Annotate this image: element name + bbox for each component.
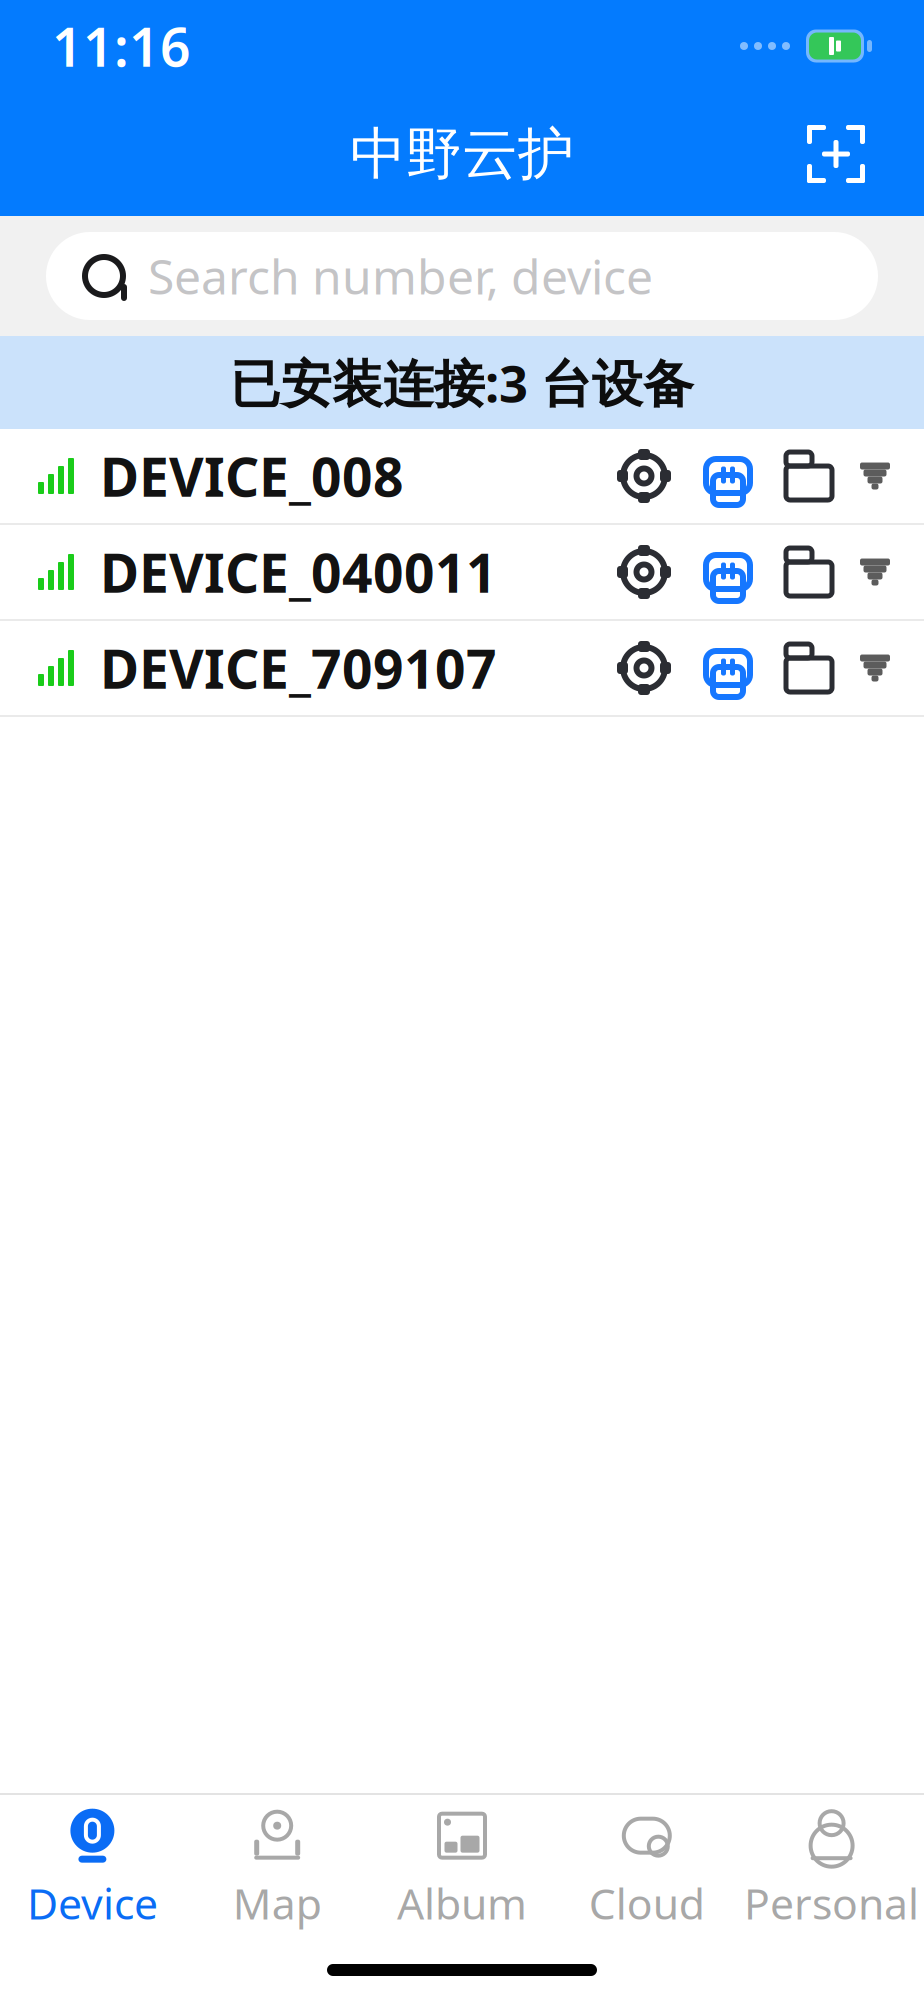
button[interactable]: Search number, device [0, 216, 924, 336]
staticText: Device [27, 1875, 158, 1931]
button[interactable]: DEVICE_040011 [0, 525, 924, 619]
staticText: Cloud [589, 1875, 705, 1931]
button[interactable]: Cloud [554, 1815, 739, 1925]
button[interactable]: Personal [739, 1815, 924, 1925]
button[interactable]: DEVICE_008 [0, 429, 924, 523]
button[interactable]: Map [185, 1815, 370, 1925]
button[interactable]: Scan QR code [788, 106, 884, 202]
button[interactable]: Device [0, 1815, 185, 1925]
button[interactable]: DEVICE_709107 [0, 621, 924, 715]
staticText: 11:16 [52, 11, 191, 81]
staticText: 中野云护 [350, 120, 574, 188]
staticText: 已安装连接:3 台设备 [230, 349, 694, 416]
staticText: DEVICE_008 [100, 441, 404, 511]
staticText: Search number, device [148, 244, 653, 308]
staticText: DEVICE_040011 [100, 537, 497, 607]
staticText: DEVICE_709107 [100, 633, 497, 703]
button[interactable]: Album [370, 1815, 554, 1925]
staticText: Album [397, 1875, 527, 1931]
staticText: Map [233, 1875, 322, 1931]
staticText: Personal [744, 1875, 919, 1931]
